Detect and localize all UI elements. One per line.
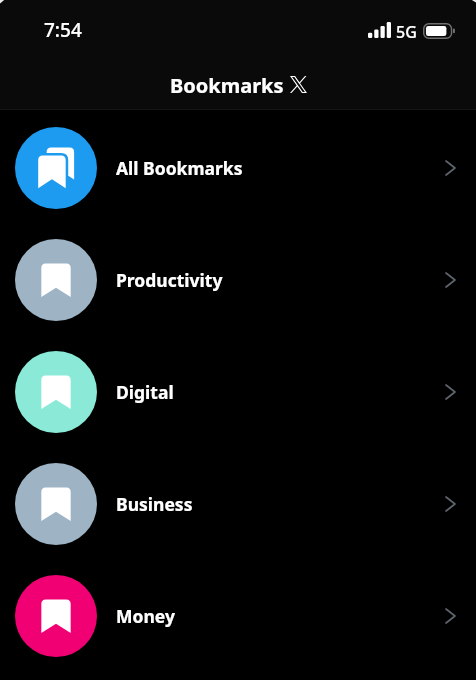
staticText: Money: [116, 604, 175, 628]
other: X: [290, 76, 307, 93]
button[interactable]: Productivity: [0, 224, 476, 336]
other: Open Digital: [446, 385, 455, 399]
button[interactable]: Business: [0, 448, 476, 560]
other: Open All Bookmarks: [446, 161, 455, 175]
staticText: Bookmarks: [170, 72, 284, 99]
staticText: Digital: [116, 380, 174, 404]
staticText: Productivity: [116, 268, 223, 292]
button[interactable]: All Bookmarks: [0, 112, 476, 224]
staticText: All Bookmarks: [116, 156, 243, 180]
other: Open Business: [446, 497, 455, 511]
staticText: Business: [116, 492, 193, 516]
button[interactable]: Digital: [0, 336, 476, 448]
staticText: 7:54: [44, 17, 82, 43]
other: Open Productivity: [446, 273, 455, 287]
staticText: 5G: [396, 21, 417, 43]
other: Open Money: [446, 609, 455, 623]
button[interactable]: Money: [0, 560, 476, 672]
